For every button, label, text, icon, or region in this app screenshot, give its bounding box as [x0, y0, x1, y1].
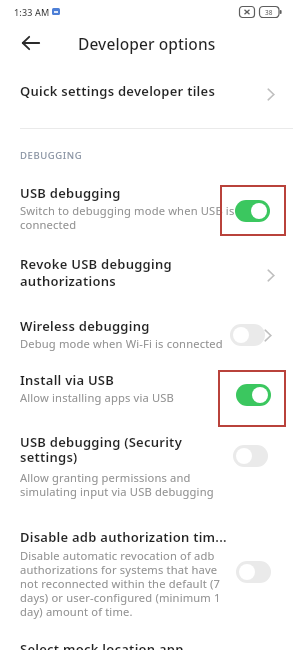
staticText: Disable adb authorization tim...: [20, 528, 227, 546]
staticText: not reconnected within the default (7: [20, 576, 221, 591]
staticText: Quick settings developer tiles: [20, 82, 216, 100]
staticText: Allow granting permissions and: [20, 470, 191, 485]
staticText: days) or user-configured (minimum 1: [20, 590, 221, 605]
staticText: Developer options: [78, 33, 216, 54]
button[interactable]: [236, 561, 271, 583]
button[interactable]: [22, 36, 40, 50]
button[interactable]: Revoke USB debugging: [0, 254, 293, 296]
staticText: USB debugging (Security: [20, 433, 183, 451]
staticText: Switch to debugging mode when USB is: [20, 203, 235, 218]
staticText: Install via USB: [20, 371, 115, 389]
button[interactable]: USB debugging (Security: [0, 432, 293, 496]
staticText: authorizations: [20, 272, 116, 290]
staticText: day) amount of time.: [20, 604, 133, 619]
staticText: Select mock location app: [20, 640, 184, 650]
staticText: simulating input via USB debugging: [20, 484, 214, 499]
staticText: settings): [20, 448, 78, 466]
button[interactable]: USB debugging: [0, 180, 293, 236]
button[interactable]: Disable adb authorization tim...: [0, 527, 293, 623]
button[interactable]: Install via USB: [0, 370, 293, 410]
staticText: connected: [20, 217, 77, 232]
button[interactable]: Quick settings developer tiles: [0, 74, 293, 114]
staticText: Debug mode when Wi-Fi is connected: [20, 336, 223, 351]
staticText: Disable automatic revocation of adb: [20, 548, 215, 563]
button[interactable]: [233, 445, 268, 467]
button[interactable]: [235, 200, 270, 222]
staticText: authorizations for systems that have: [20, 562, 218, 577]
staticText: Wireless debugging: [20, 317, 150, 335]
button[interactable]: Wireless debugging: [0, 316, 293, 354]
staticText: 1:33 AM: [14, 6, 50, 18]
button[interactable]: [236, 384, 271, 406]
staticText: Revoke USB debugging: [20, 255, 172, 273]
staticText: 38: [265, 8, 273, 17]
staticText: Allow installing apps via USB: [20, 390, 175, 405]
staticText: USB debugging: [20, 184, 121, 202]
button[interactable]: [230, 324, 265, 346]
staticText: DEBUGGING: [20, 149, 83, 162]
